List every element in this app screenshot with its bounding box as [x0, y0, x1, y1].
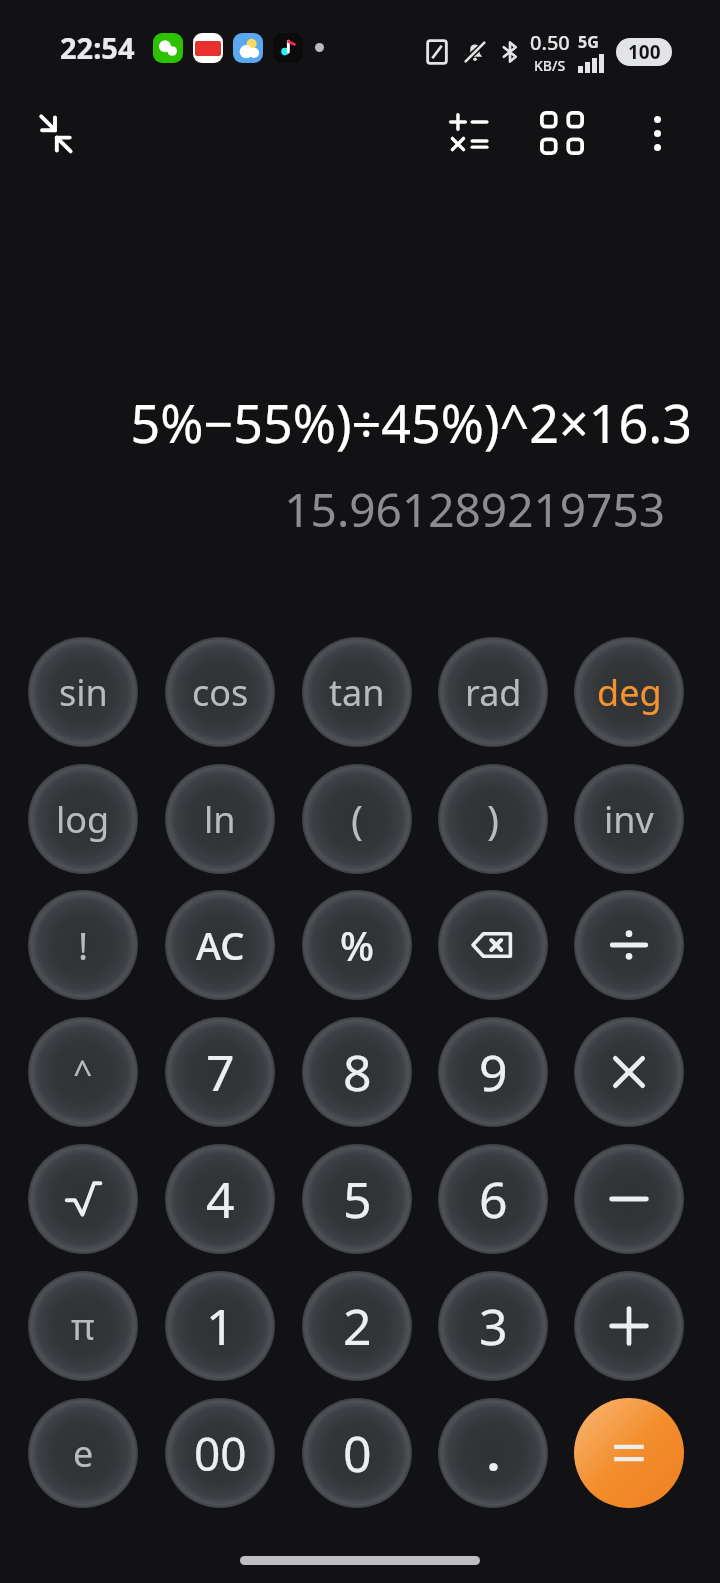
button[interactable]: Minus [574, 1144, 684, 1254]
staticText: deg [597, 668, 662, 717]
button[interactable]: 00 [165, 1398, 275, 1508]
staticText: sin [59, 668, 108, 717]
button[interactable]: log [28, 764, 138, 874]
staticText: 0.50 [530, 29, 570, 56]
staticText: 5 [343, 1165, 372, 1233]
button[interactable]: . [438, 1398, 548, 1508]
button[interactable]: 6 [438, 1144, 548, 1254]
button[interactable]: Backspace [438, 890, 548, 1000]
button[interactable]: Collapse [14, 92, 96, 174]
button[interactable]: ! [28, 890, 138, 1000]
button[interactable]: Equals [574, 1398, 684, 1508]
button[interactable]: More options [616, 92, 698, 174]
button[interactable]: 2 [302, 1271, 412, 1381]
button[interactable]: Divide [574, 890, 684, 1000]
button[interactable]: deg [574, 637, 684, 747]
button[interactable]: Square root [28, 1144, 138, 1254]
staticText: 3 [479, 1292, 508, 1360]
staticText: 0 [343, 1419, 372, 1487]
staticText: 7 [206, 1038, 235, 1106]
button[interactable]: tan [302, 637, 412, 747]
staticText: 15.961289219753 [284, 478, 665, 540]
button[interactable]: cos [165, 637, 275, 747]
button[interactable]: inv [574, 764, 684, 874]
button[interactable]: Plus [574, 1271, 684, 1381]
button[interactable]: 9 [438, 1017, 548, 1127]
button[interactable]: rad [438, 637, 548, 747]
button[interactable]: ( [302, 764, 412, 874]
staticText: 6 [479, 1165, 508, 1233]
button[interactable]: AC [165, 890, 275, 1000]
button[interactable]: 0 [302, 1398, 412, 1508]
button[interactable]: 1 [165, 1271, 275, 1381]
staticText: KB/S [534, 56, 566, 75]
staticText: . [487, 1422, 500, 1485]
button[interactable]: 8 [302, 1017, 412, 1127]
button[interactable]: π [28, 1271, 138, 1381]
button[interactable]: ) [438, 764, 548, 874]
button[interactable]: 3 [438, 1271, 548, 1381]
button[interactable]: Operators [428, 92, 510, 174]
staticText: 9 [479, 1038, 508, 1106]
staticText: % [340, 918, 375, 972]
staticText: ! [78, 919, 89, 971]
button[interactable]: 7 [165, 1017, 275, 1127]
staticText: cos [192, 668, 249, 717]
staticText: ) [487, 792, 499, 846]
button[interactable]: 4 [165, 1144, 275, 1254]
staticText: tan [329, 668, 385, 717]
button[interactable]: sin [28, 637, 138, 747]
staticText: e [73, 1429, 94, 1478]
staticText: 8 [343, 1038, 372, 1106]
staticText: 00 [194, 1422, 247, 1485]
staticText: AC [196, 919, 245, 971]
staticText: ^ [73, 1049, 93, 1095]
staticText: 100 [628, 39, 661, 65]
button[interactable]: 5 [302, 1144, 412, 1254]
button[interactable]: Multiply [574, 1017, 684, 1127]
button[interactable]: e [28, 1398, 138, 1508]
staticText: rad [465, 668, 522, 717]
staticText: π [71, 1302, 95, 1351]
staticText: inv [604, 795, 654, 844]
staticText: 2 [343, 1292, 372, 1360]
staticText: 5G [578, 31, 599, 53]
button[interactable]: Layout [521, 92, 603, 174]
staticText: 4 [206, 1165, 235, 1233]
staticText: 1 [206, 1292, 235, 1360]
staticText: log [56, 795, 110, 844]
button[interactable]: ln [165, 764, 275, 874]
button[interactable]: % [302, 890, 412, 1000]
staticText: 5%−55%)÷45%)^2×16.3 [130, 387, 692, 458]
button[interactable]: ^ [28, 1017, 138, 1127]
staticText: ( [351, 792, 363, 846]
staticText: ln [204, 795, 236, 844]
staticText: 22:54 [60, 28, 135, 67]
